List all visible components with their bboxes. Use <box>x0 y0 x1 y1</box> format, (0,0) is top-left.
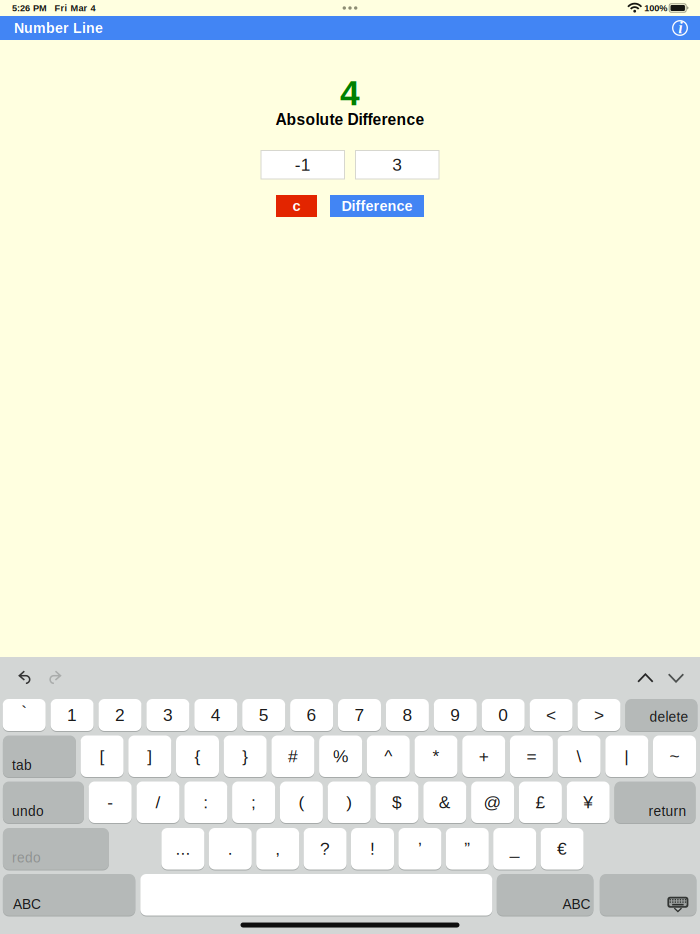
staticText: | <box>624 747 629 766</box>
staticText: / <box>155 793 160 812</box>
button[interactable]: < <box>530 699 573 731</box>
button[interactable]: Redo <box>40 662 72 694</box>
staticText: 7 <box>354 705 364 725</box>
button[interactable]: \ <box>558 735 601 777</box>
button[interactable]: { <box>176 735 219 777</box>
staticText: ( <box>298 793 304 812</box>
staticText: _ <box>510 839 520 858</box>
button[interactable]: tab <box>3 735 76 777</box>
button[interactable]: 2 <box>98 699 141 731</box>
button[interactable]: ’ <box>398 828 441 869</box>
staticText: ! <box>370 839 375 858</box>
button[interactable]: , <box>256 828 299 869</box>
staticText: undo <box>12 804 44 819</box>
staticText: ¥ <box>583 793 593 812</box>
button[interactable]: ^ <box>367 735 410 777</box>
button[interactable]: ) <box>328 781 371 823</box>
button[interactable]: : <box>184 781 227 823</box>
button[interactable]: | <box>605 735 648 777</box>
button[interactable]: Next field <box>661 662 691 694</box>
button[interactable]: 0 <box>482 699 525 731</box>
button[interactable]: / <box>136 781 179 823</box>
button[interactable]: & <box>423 781 466 823</box>
staticText: ) <box>346 793 352 812</box>
button[interactable]: [ <box>81 735 124 777</box>
button[interactable]: ] <box>128 735 171 777</box>
staticText: ] <box>147 747 152 766</box>
button[interactable] <box>140 874 492 915</box>
staticText: ABC <box>13 897 41 912</box>
button[interactable]: 1 <box>51 699 94 731</box>
staticText: 8 <box>402 705 412 725</box>
staticText: -1 <box>295 155 311 174</box>
staticText: % <box>333 747 348 766</box>
button[interactable]: Undo <box>8 662 40 694</box>
button[interactable]: 4 <box>194 699 237 731</box>
button[interactable]: Info <box>668 16 692 40</box>
button[interactable]: ABC <box>3 874 135 915</box>
button[interactable]: # <box>271 735 314 777</box>
staticText: 4 <box>211 705 221 725</box>
staticText: delete <box>649 709 688 725</box>
button[interactable]: ? <box>304 828 347 869</box>
button[interactable]: * <box>414 735 457 777</box>
button[interactable]: 5 <box>242 699 285 731</box>
staticText: & <box>439 793 451 812</box>
staticText: £ <box>535 793 545 812</box>
staticText: - <box>107 793 113 812</box>
staticText: ` <box>21 702 27 722</box>
button[interactable]: Hide keyboard <box>600 874 696 915</box>
button[interactable]: ` <box>3 699 46 731</box>
staticText: 5:26 PM <box>12 3 47 13</box>
staticText: Difference <box>341 198 412 214</box>
button[interactable]: € <box>541 828 584 869</box>
button[interactable]: ; <box>232 781 275 823</box>
button[interactable]: ~ <box>653 735 696 777</box>
button[interactable]: £ <box>519 781 562 823</box>
staticText: 0 <box>498 705 508 725</box>
button[interactable]: -1 <box>261 150 344 179</box>
button[interactable]: $ <box>375 781 418 823</box>
button[interactable]: - <box>89 781 132 823</box>
button[interactable]: > <box>577 699 620 731</box>
staticText: 4 <box>340 73 360 113</box>
staticText: return <box>648 804 686 819</box>
staticText: = <box>526 747 536 766</box>
button[interactable]: 3 <box>355 150 439 179</box>
button[interactable]: Difference <box>330 195 424 217</box>
button[interactable]: } <box>224 735 267 777</box>
button[interactable]: ! <box>351 828 394 869</box>
staticText: € <box>557 839 567 858</box>
button[interactable]: delete <box>625 699 697 731</box>
staticText: ABC <box>562 897 590 912</box>
button[interactable]: + <box>462 735 505 777</box>
button[interactable]: = <box>510 735 553 777</box>
button[interactable]: undo <box>3 781 84 823</box>
button[interactable]: Previous field <box>630 662 660 694</box>
button[interactable]: . <box>209 828 252 869</box>
button[interactable]: ” <box>446 828 489 869</box>
staticText: 5 <box>259 705 269 725</box>
button[interactable]: 7 <box>338 699 381 731</box>
button[interactable]: return <box>614 781 695 823</box>
button[interactable]: % <box>319 735 362 777</box>
button[interactable]: ( <box>280 781 323 823</box>
button[interactable]: redo <box>3 828 109 869</box>
staticText: ? <box>320 839 330 858</box>
button[interactable]: 3 <box>146 699 189 731</box>
staticText: 3 <box>163 705 173 725</box>
staticText: : <box>203 793 208 812</box>
button[interactable]: ... <box>161 828 204 869</box>
button[interactable]: c <box>276 195 317 217</box>
button[interactable]: 9 <box>434 699 477 731</box>
button[interactable]: 6 <box>290 699 333 731</box>
button[interactable]: 8 <box>386 699 429 731</box>
staticText: i <box>678 19 682 37</box>
button[interactable]: @ <box>471 781 514 823</box>
button[interactable]: _ <box>493 828 536 869</box>
staticText: < <box>546 705 556 725</box>
button[interactable]: ABC <box>497 874 593 915</box>
button[interactable]: ¥ <box>567 781 610 823</box>
staticText: redo <box>12 850 41 865</box>
staticText: # <box>288 747 298 766</box>
